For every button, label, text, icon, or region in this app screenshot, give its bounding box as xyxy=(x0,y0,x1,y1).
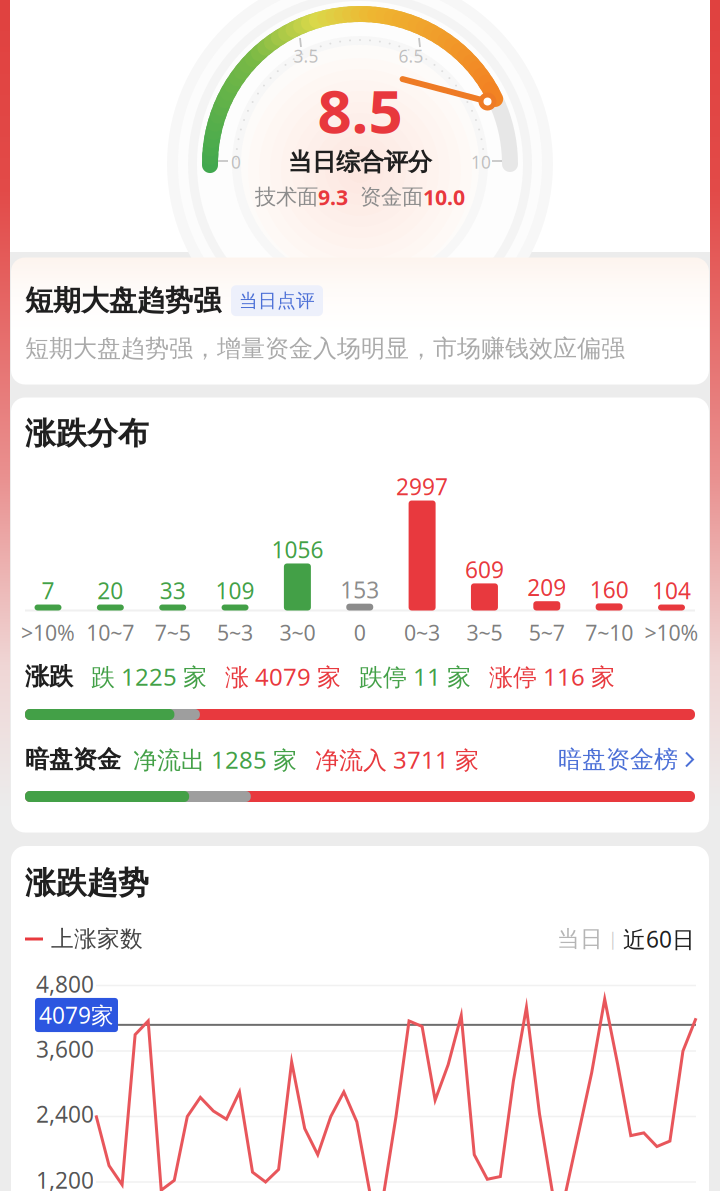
staticText: 短期大盘趋势强 xyxy=(25,283,221,318)
staticText: | xyxy=(603,927,623,950)
staticText: 2997 xyxy=(396,471,448,501)
staticText: 涨跌趋势 xyxy=(25,864,149,902)
staticText: 涨 4079 家 xyxy=(225,661,341,692)
staticText: 10.0 xyxy=(423,183,465,211)
staticText: 当日点评 xyxy=(239,289,315,312)
button[interactable]: 当日 xyxy=(557,925,603,953)
button[interactable]: 暗盘资金榜 xyxy=(558,745,695,774)
staticText: 7~10 xyxy=(585,618,633,647)
staticText: 3.5 xyxy=(293,44,318,67)
staticText: 5~7 xyxy=(529,618,565,647)
staticText: 3,600 xyxy=(36,1034,94,1064)
staticText: 3~5 xyxy=(466,618,502,647)
staticText: 0~3 xyxy=(404,618,440,647)
staticText: 153 xyxy=(340,575,379,605)
staticText: 7 xyxy=(41,575,54,605)
staticText: 涨跌分布 xyxy=(25,415,149,452)
staticText: 暗盘资金榜 xyxy=(558,745,678,774)
staticText: 10~7 xyxy=(86,618,134,647)
staticText: 5~3 xyxy=(217,618,253,647)
staticText: >10% xyxy=(644,618,698,647)
button[interactable]: 近60日 xyxy=(623,924,695,954)
staticText: 净流入 3711 家 xyxy=(315,744,479,775)
staticText: 609 xyxy=(465,554,504,584)
staticText: 当日综合评分 xyxy=(288,147,432,177)
staticText: 短期大盘趋势强，增量资金入场明显，市场赚钱效应偏强 xyxy=(25,334,625,363)
staticText: 净流出 1285 家 xyxy=(133,744,297,775)
staticText: 涨停 116 家 xyxy=(489,661,615,692)
staticText: 暗盘资金 xyxy=(25,745,121,774)
staticText: 6.5 xyxy=(398,44,423,67)
staticText: >10% xyxy=(21,618,75,647)
staticText: 20 xyxy=(97,575,123,605)
staticText: 10 xyxy=(471,150,491,173)
staticText: 4079家 xyxy=(39,1000,114,1030)
staticText: 当日 xyxy=(557,925,603,953)
staticText: 3~0 xyxy=(279,618,315,647)
staticText: 4,800 xyxy=(36,969,94,999)
staticText: 109 xyxy=(216,575,255,605)
staticText: 160 xyxy=(590,574,629,604)
staticText: 7~5 xyxy=(155,618,191,647)
staticText: 0 xyxy=(354,618,366,647)
staticText: 上涨家数 xyxy=(51,925,143,953)
staticText: 跌停 11 家 xyxy=(359,661,471,692)
staticText: 涨跌 xyxy=(25,662,73,691)
staticText: 9.3 xyxy=(318,183,348,211)
staticText: 跌 1225 家 xyxy=(91,661,207,692)
staticText: 104 xyxy=(652,575,691,605)
staticText: 2,400 xyxy=(36,1099,94,1129)
staticText: 33 xyxy=(160,575,186,605)
staticText: 近60日 xyxy=(623,924,695,954)
staticText: 1056 xyxy=(271,534,323,564)
staticText: 资金面 xyxy=(360,184,423,210)
staticText: 1,200 xyxy=(36,1165,94,1191)
staticText: 0 xyxy=(231,150,241,173)
staticText: 技术面 xyxy=(255,184,318,210)
staticText: 209 xyxy=(527,572,566,602)
staticText: 8.5 xyxy=(317,70,402,150)
